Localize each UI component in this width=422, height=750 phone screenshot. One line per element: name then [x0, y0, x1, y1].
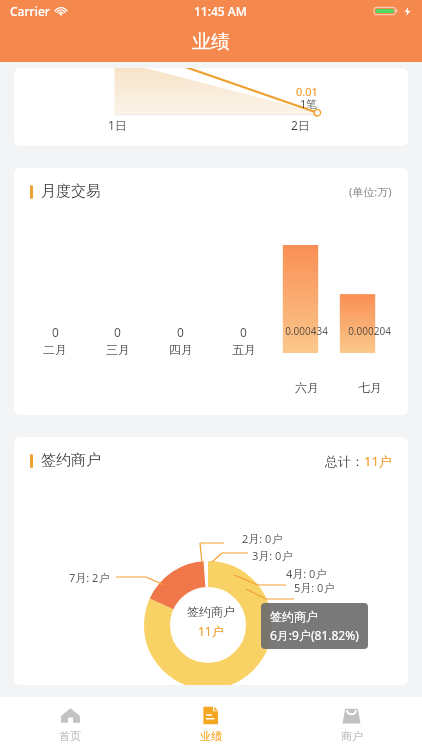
staticText: 月度交易	[41, 182, 101, 201]
staticText: 0.000204	[348, 324, 391, 338]
staticText: 签约商户	[270, 609, 318, 624]
staticText: 三月	[106, 342, 130, 357]
staticText: 0	[240, 324, 247, 340]
button[interactable]: 业绩	[140, 698, 281, 750]
staticText: 六月	[295, 380, 319, 395]
staticText: 0	[52, 324, 59, 340]
staticText: 4月: 0户	[286, 566, 327, 581]
staticText: 0.000434	[285, 324, 328, 338]
staticText: 业绩	[200, 729, 222, 743]
staticText: 11:45 AM	[194, 3, 247, 19]
staticText: 1笔	[300, 96, 318, 111]
staticText: 1日	[108, 117, 127, 133]
staticText: 业绩	[192, 30, 230, 54]
staticText: 7月: 2户	[69, 570, 110, 585]
staticText: 总计：	[325, 453, 364, 469]
button[interactable]: 首页	[0, 698, 140, 750]
staticText: 2日	[291, 117, 310, 133]
staticText: 2月: 0户	[242, 531, 283, 546]
staticText: 0	[177, 324, 184, 340]
button[interactable]: 商户	[281, 698, 422, 750]
staticText: 签约商户	[41, 451, 101, 470]
staticText: 0	[114, 324, 121, 340]
staticText: 五月	[232, 342, 256, 357]
staticText: 商户	[341, 729, 363, 743]
staticText: 二月	[43, 342, 67, 357]
staticText: Carrier	[10, 3, 50, 19]
staticText: 签约商户	[187, 604, 235, 619]
staticText: 11户	[198, 623, 224, 639]
staticText: 0.01	[296, 84, 318, 99]
staticText: 七月	[358, 380, 382, 395]
staticText: 首页	[59, 729, 81, 743]
staticText: 3月: 0户	[252, 548, 293, 563]
staticText: 5月: 0户	[294, 580, 335, 595]
staticText: 11户	[364, 452, 392, 470]
staticText: 6月:9户(81.82%)	[270, 627, 359, 643]
staticText: 四月	[169, 342, 193, 357]
staticText: (单位:万)	[349, 184, 392, 199]
